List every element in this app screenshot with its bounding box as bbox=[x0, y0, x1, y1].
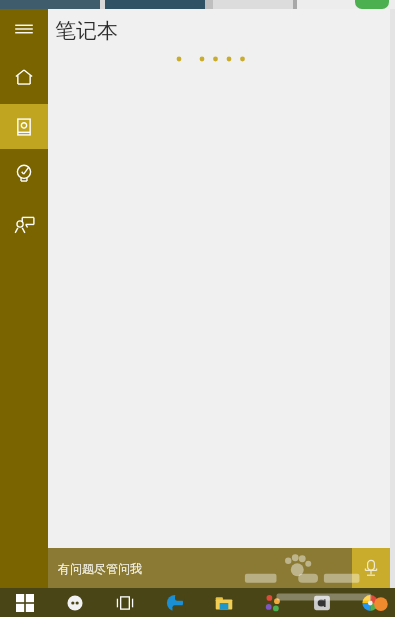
button[interactable]: Notebook bbox=[0, 104, 48, 149]
button[interactable]: Start bbox=[0, 588, 50, 617]
button[interactable]: File Explorer bbox=[199, 588, 248, 617]
staticText: 笔记本 bbox=[55, 18, 118, 44]
button[interactable]: Home bbox=[0, 49, 48, 104]
staticText: 有问题尽管问我 bbox=[58, 561, 142, 576]
button[interactable]: Microphone bbox=[352, 548, 390, 588]
button[interactable]: 有问题尽管问我 bbox=[48, 548, 352, 588]
button[interactable]: App bbox=[297, 588, 346, 617]
button[interactable]: Task view bbox=[100, 588, 150, 617]
button[interactable]: Cortana bbox=[50, 588, 100, 617]
button[interactable]: App bbox=[248, 588, 297, 617]
button[interactable]: Browser bbox=[346, 588, 395, 617]
button[interactable]: Feedback bbox=[0, 199, 48, 249]
button[interactable]: Menu bbox=[0, 9, 48, 49]
button[interactable]: Edge bbox=[150, 588, 199, 617]
button[interactable]: Tips bbox=[0, 149, 48, 199]
